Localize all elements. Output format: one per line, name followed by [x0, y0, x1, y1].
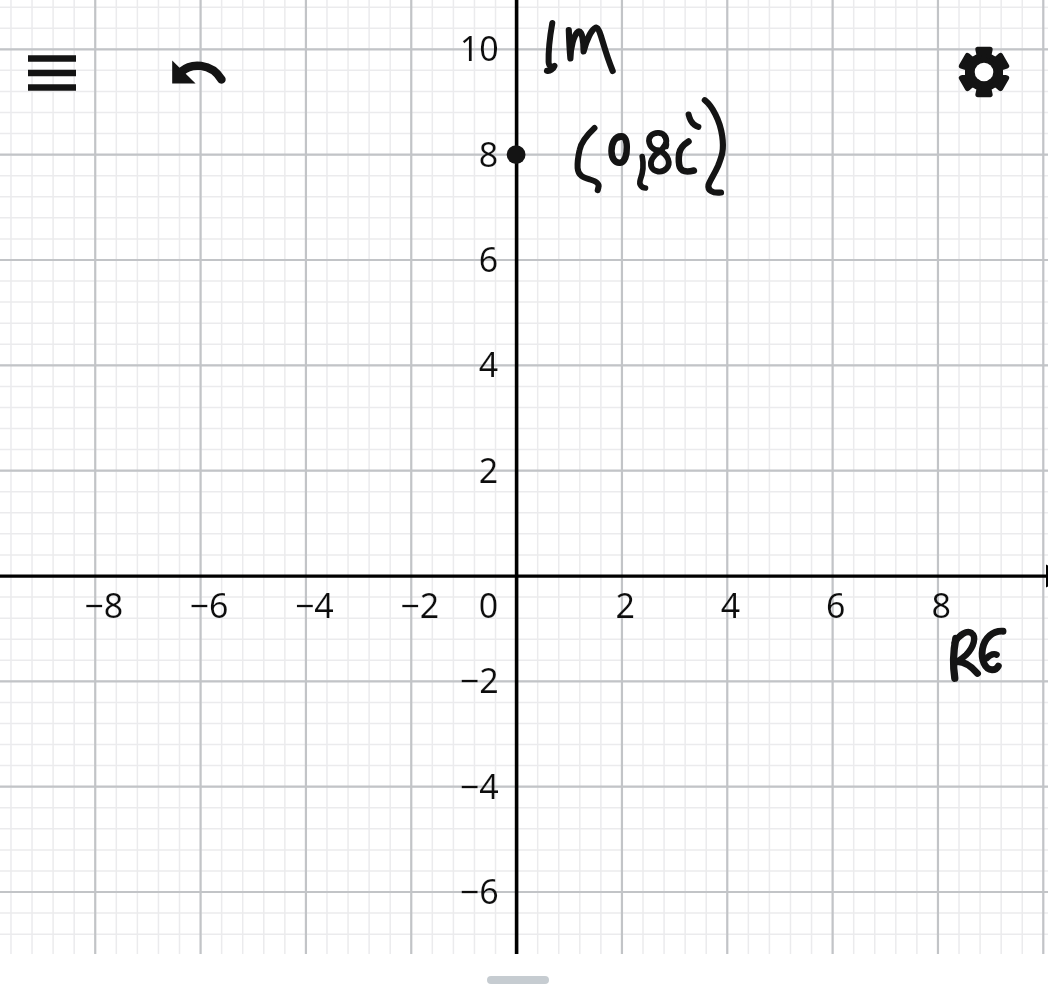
- button[interactable]: Undo: [162, 36, 238, 108]
- button[interactable]: Settings: [948, 36, 1024, 108]
- button[interactable]: Menu: [14, 36, 90, 108]
